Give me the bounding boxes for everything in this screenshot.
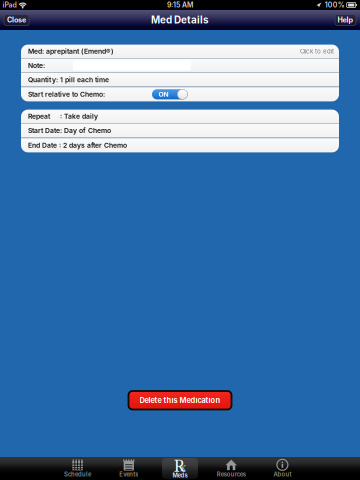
button[interactable]: Start relative to Chemo toggle, on [152,89,188,99]
staticText: ON [158,90,168,98]
button[interactable]: x [154,457,206,480]
staticText: x [180,460,186,474]
staticText: End Date : 2 days after Chemo [28,141,127,149]
button[interactable]: Resources [206,457,257,480]
staticText: Help [337,16,353,24]
staticText: Med Details [151,14,209,26]
staticText: R [174,454,185,477]
staticText: Med: aprepitant (Emend®) [28,47,114,55]
staticText: Close [7,16,26,24]
button[interactable]: Help [335,14,356,26]
staticText: Start relative to Chemo: [28,90,105,98]
staticText: Repeat : Take daily [28,112,98,120]
button[interactable]: Schedule [52,457,103,480]
button[interactable]: Close [4,14,29,26]
staticText: 9:15 AM [167,1,193,9]
staticText: Quantity: 1 pill each time [28,76,109,84]
staticText: Delete this Medication [139,396,220,405]
staticText: Note: [28,61,45,70]
staticText: 100% [325,1,345,9]
staticText: Click to edit [300,48,334,55]
staticText: Schedule [64,471,91,478]
staticText: Start Date: Day of Chemo [28,126,111,135]
button[interactable]: Events [103,457,154,480]
staticText: About [273,471,291,478]
staticText: Resources [217,471,246,478]
button[interactable]: About [257,457,308,480]
button[interactable]: Delete this Medication [128,391,231,409]
staticText: Meds [172,472,187,479]
staticText: iPad [2,1,16,9]
staticText: Events [119,471,138,478]
